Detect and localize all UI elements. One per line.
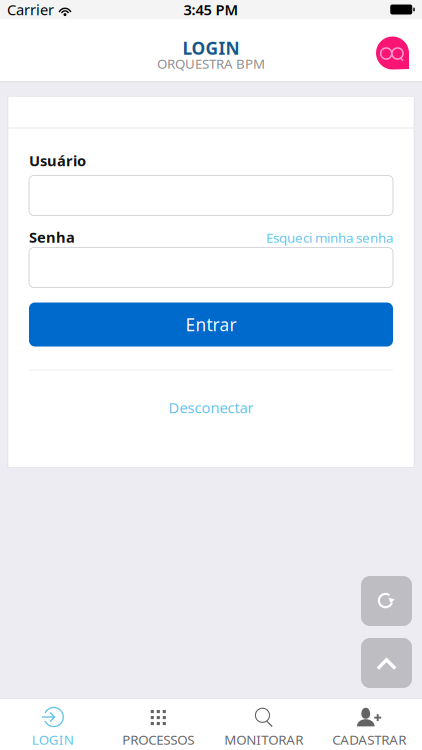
staticText: ORQUESTRA BPM <box>157 55 265 72</box>
staticText: PROCESSOS <box>122 731 194 748</box>
button[interactable]: Orquestra BPM <box>376 35 409 72</box>
staticText: LOGIN <box>182 36 239 59</box>
button[interactable]: Entrar <box>29 302 393 346</box>
staticText: Carrier <box>7 0 54 19</box>
staticText: Esqueci minha senha <box>266 229 393 246</box>
button[interactable]: CADASTRAR <box>316 699 422 750</box>
button[interactable]: LOGIN <box>0 699 105 750</box>
staticText: Desconectar <box>168 398 253 417</box>
button[interactable]: MONITORAR <box>211 699 316 750</box>
staticText: Usuário <box>29 151 86 170</box>
staticText: Entrar <box>185 313 236 336</box>
staticText: 3:45 PM <box>183 0 238 19</box>
button[interactable]: Refresh <box>361 576 412 626</box>
staticText: LOGIN <box>32 731 74 748</box>
staticText: CADASTRAR <box>332 731 406 748</box>
button[interactable]: Scroll to top <box>361 638 412 688</box>
button[interactable]: Desconectar <box>29 398 393 416</box>
button[interactable]: PROCESSOS <box>105 699 211 750</box>
button[interactable]: Esqueci minha senha <box>266 229 393 246</box>
staticText: Senha <box>29 227 75 247</box>
staticText: MONITORAR <box>224 731 303 748</box>
